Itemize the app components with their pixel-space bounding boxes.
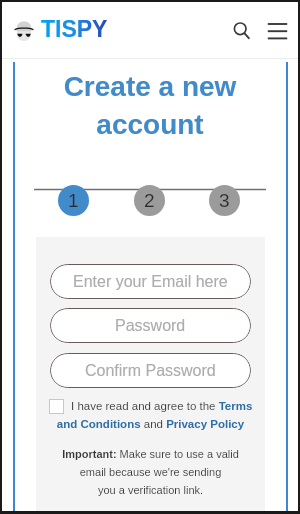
staticText: I have read and agree to the Terms [71, 400, 253, 413]
staticText: TISPY [41, 16, 108, 42]
staticText: and Conditions and Privacy Policy [36, 418, 265, 431]
button[interactable]: Accept terms and conditions [36, 399, 265, 431]
staticText: Create a new account [0, 71, 300, 140]
button[interactable]: Enter your Email here [50, 264, 251, 299]
other: Accept terms and conditions [49, 399, 64, 414]
staticText: 3 [219, 190, 230, 211]
staticText: Enter your Email here [73, 273, 228, 291]
button[interactable]: Menu [266, 18, 288, 40]
button[interactable]: Search [230, 18, 252, 40]
staticText: 1 [68, 190, 79, 211]
staticText: 2 [144, 190, 155, 211]
button[interactable]: 1 [58, 185, 89, 216]
button[interactable]: Password [50, 308, 251, 343]
button[interactable]: 2 [134, 185, 165, 216]
button[interactable]: 3 [209, 185, 240, 216]
staticText: Important: Make sure to use a valid emai… [44, 448, 257, 497]
button[interactable]: Confirm Password [50, 353, 251, 388]
staticText: Confirm Password [85, 362, 216, 380]
staticText: Password [115, 317, 186, 335]
